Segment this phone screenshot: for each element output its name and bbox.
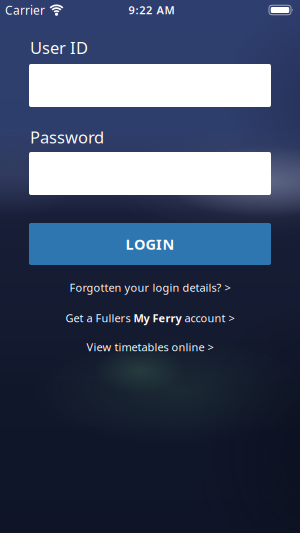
staticText: Get a Fullers My Ferry account > bbox=[65, 311, 234, 325]
staticText: Carrier bbox=[5, 2, 45, 18]
button[interactable]: View timetables online > bbox=[86, 339, 213, 354]
staticText: 9:22 AM bbox=[129, 2, 174, 17]
staticText: User ID bbox=[30, 36, 88, 59]
button[interactable]: LOGIN bbox=[29, 223, 271, 265]
staticText: LOGIN bbox=[125, 234, 174, 254]
button[interactable]: Forgotten your login details? > bbox=[69, 280, 230, 295]
staticText: Password bbox=[30, 126, 104, 148]
staticText: View timetables online > bbox=[86, 339, 213, 354]
button[interactable]: User ID bbox=[29, 64, 271, 107]
staticText: Forgotten your login details? > bbox=[69, 280, 230, 295]
button[interactable]: Get a Fullers My Ferry account > bbox=[65, 311, 234, 325]
